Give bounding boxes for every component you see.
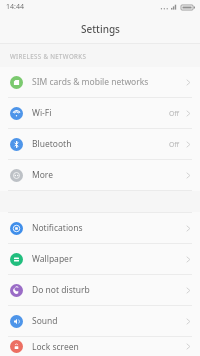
staticText: Wallpaper <box>32 253 186 265</box>
staticText: Off <box>169 109 179 118</box>
staticText: More <box>32 169 186 181</box>
staticText: Lock screen <box>32 341 186 353</box>
staticText: Do not disturb <box>32 284 186 296</box>
button[interactable]: Bluetooth <box>0 129 200 159</box>
other: Open SIM cards & mobile networks <box>186 78 191 87</box>
other: Open Sound <box>186 317 191 326</box>
button[interactable]: More <box>0 160 200 190</box>
staticText: Sound <box>32 315 186 327</box>
other: Open Bluetooth <box>186 140 191 149</box>
staticText: Settings <box>81 22 120 36</box>
staticText: 14:44 <box>6 2 24 12</box>
button[interactable]: Sound <box>0 306 200 336</box>
staticText: Off <box>169 140 179 149</box>
other: Open More <box>186 171 191 180</box>
staticText: WIRELESS & NETWORKS <box>10 52 87 60</box>
button[interactable]: SIM cards & mobile networks <box>0 67 200 97</box>
button[interactable]: Notifications <box>0 213 200 243</box>
button[interactable]: Lock screen <box>0 337 200 356</box>
other: Open Wallpaper <box>186 255 191 264</box>
other: Open Do not disturb <box>186 286 191 295</box>
button[interactable]: Wi-Fi <box>0 98 200 128</box>
button[interactable]: Wallpaper <box>0 244 200 274</box>
other: Open Wi-Fi <box>186 109 191 118</box>
staticText: Notifications <box>32 222 186 234</box>
other: Open Lock screen <box>186 342 191 351</box>
staticText: Wi-Fi <box>32 107 169 119</box>
button[interactable]: Do not disturb <box>0 275 200 305</box>
other: Open Notifications <box>186 224 191 233</box>
staticText: Bluetooth <box>32 138 169 150</box>
staticText: SIM cards & mobile networks <box>32 76 186 88</box>
